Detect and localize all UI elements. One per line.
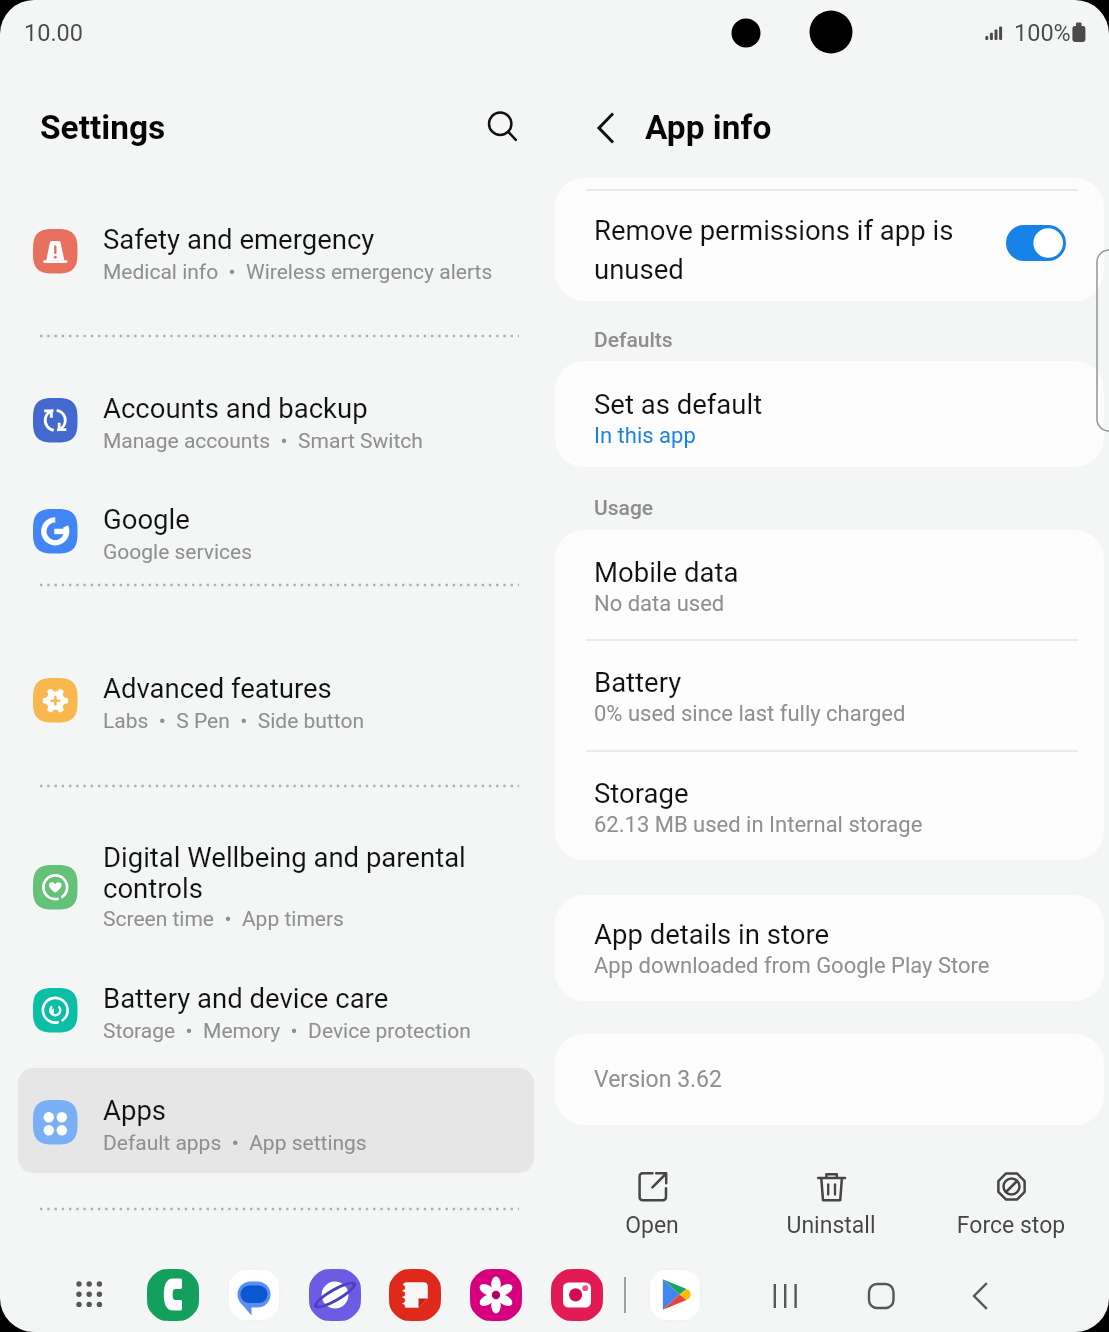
staticText: Open bbox=[593, 1212, 711, 1239]
staticText: Screen time • App timers bbox=[103, 907, 344, 932]
staticText: In this app bbox=[594, 423, 696, 449]
button[interactable]: Back bbox=[945, 1260, 1017, 1332]
staticText: Battery and device care bbox=[103, 982, 389, 1014]
button[interactable]: Remove permissions if app is unused bbox=[555, 178, 1104, 301]
staticText: Advanced features bbox=[103, 672, 332, 704]
button[interactable] bbox=[18, 835, 534, 940]
staticText: Manage accounts • Smart Switch bbox=[103, 429, 423, 454]
staticText: Labs • S Pen • Side button bbox=[103, 709, 364, 734]
button[interactable]: play bbox=[647, 1267, 703, 1323]
staticText: Battery bbox=[594, 666, 682, 698]
button[interactable] bbox=[18, 1070, 534, 1175]
staticText: Defaults bbox=[594, 328, 673, 353]
staticText: Remove permissions if app is unused bbox=[594, 214, 954, 286]
button[interactable]: Mobile data bbox=[555, 530, 1104, 640]
staticText: Settings bbox=[40, 108, 166, 147]
button[interactable]: Back bbox=[580, 101, 632, 153]
staticText: Default apps • App settings bbox=[103, 1131, 367, 1156]
button[interactable]: App details in store bbox=[555, 895, 1104, 1001]
button[interactable] bbox=[18, 648, 534, 753]
button[interactable]: camera bbox=[549, 1267, 605, 1323]
staticText: Set as default bbox=[594, 388, 763, 420]
staticText: 10.00 bbox=[24, 19, 84, 47]
button[interactable]: Search bbox=[475, 99, 531, 155]
button[interactable] bbox=[18, 368, 534, 473]
staticText: Uninstall bbox=[754, 1212, 908, 1239]
button[interactable] bbox=[18, 199, 534, 304]
button[interactable]: messages bbox=[226, 1267, 282, 1323]
staticText: 0% used since last fully charged bbox=[594, 701, 906, 727]
staticText: Safety and emergency bbox=[103, 223, 375, 255]
staticText: App details in store bbox=[594, 918, 830, 950]
button[interactable]: gallery bbox=[468, 1267, 524, 1323]
staticText: Version 3.62 bbox=[594, 1066, 722, 1093]
staticText: Storage • Memory • Device protection bbox=[103, 1019, 471, 1044]
button[interactable]: Set as default bbox=[555, 361, 1104, 467]
staticText: Apps bbox=[103, 1094, 167, 1126]
button[interactable]: internet bbox=[307, 1267, 363, 1323]
staticText: App info bbox=[645, 108, 772, 147]
button[interactable] bbox=[18, 958, 534, 1063]
staticText: Accounts and backup bbox=[103, 392, 368, 424]
button[interactable]: phone bbox=[145, 1267, 201, 1323]
staticText: App downloaded from Google Play Store bbox=[594, 953, 990, 979]
button[interactable]: Force stop bbox=[925, 1162, 1097, 1246]
button[interactable]: Open bbox=[593, 1162, 711, 1246]
staticText: Google services bbox=[103, 540, 253, 565]
button[interactable]: Battery bbox=[555, 640, 1104, 750]
button[interactable] bbox=[18, 479, 534, 584]
staticText: Storage bbox=[594, 777, 689, 809]
staticText: 62.13 MB used in Internal storage bbox=[594, 812, 923, 838]
button[interactable]: Home bbox=[845, 1260, 917, 1332]
staticText: Medical info • Wireless emergency alerts bbox=[103, 260, 493, 285]
button[interactable]: Uninstall bbox=[754, 1162, 908, 1246]
button[interactable]: Storage bbox=[555, 751, 1104, 860]
staticText: Google bbox=[103, 503, 190, 535]
staticText: Force stop bbox=[925, 1212, 1097, 1239]
staticText: Digital Wellbeing and parental controls bbox=[103, 841, 466, 905]
staticText: Mobile data bbox=[594, 556, 739, 588]
staticText: Usage bbox=[594, 496, 654, 521]
button[interactable]: All apps bbox=[62, 1267, 118, 1323]
staticText: 100% bbox=[1014, 19, 1071, 47]
staticText: No data used bbox=[594, 591, 725, 617]
button[interactable]: notes bbox=[387, 1267, 443, 1323]
button[interactable]: Recent apps bbox=[749, 1260, 821, 1332]
